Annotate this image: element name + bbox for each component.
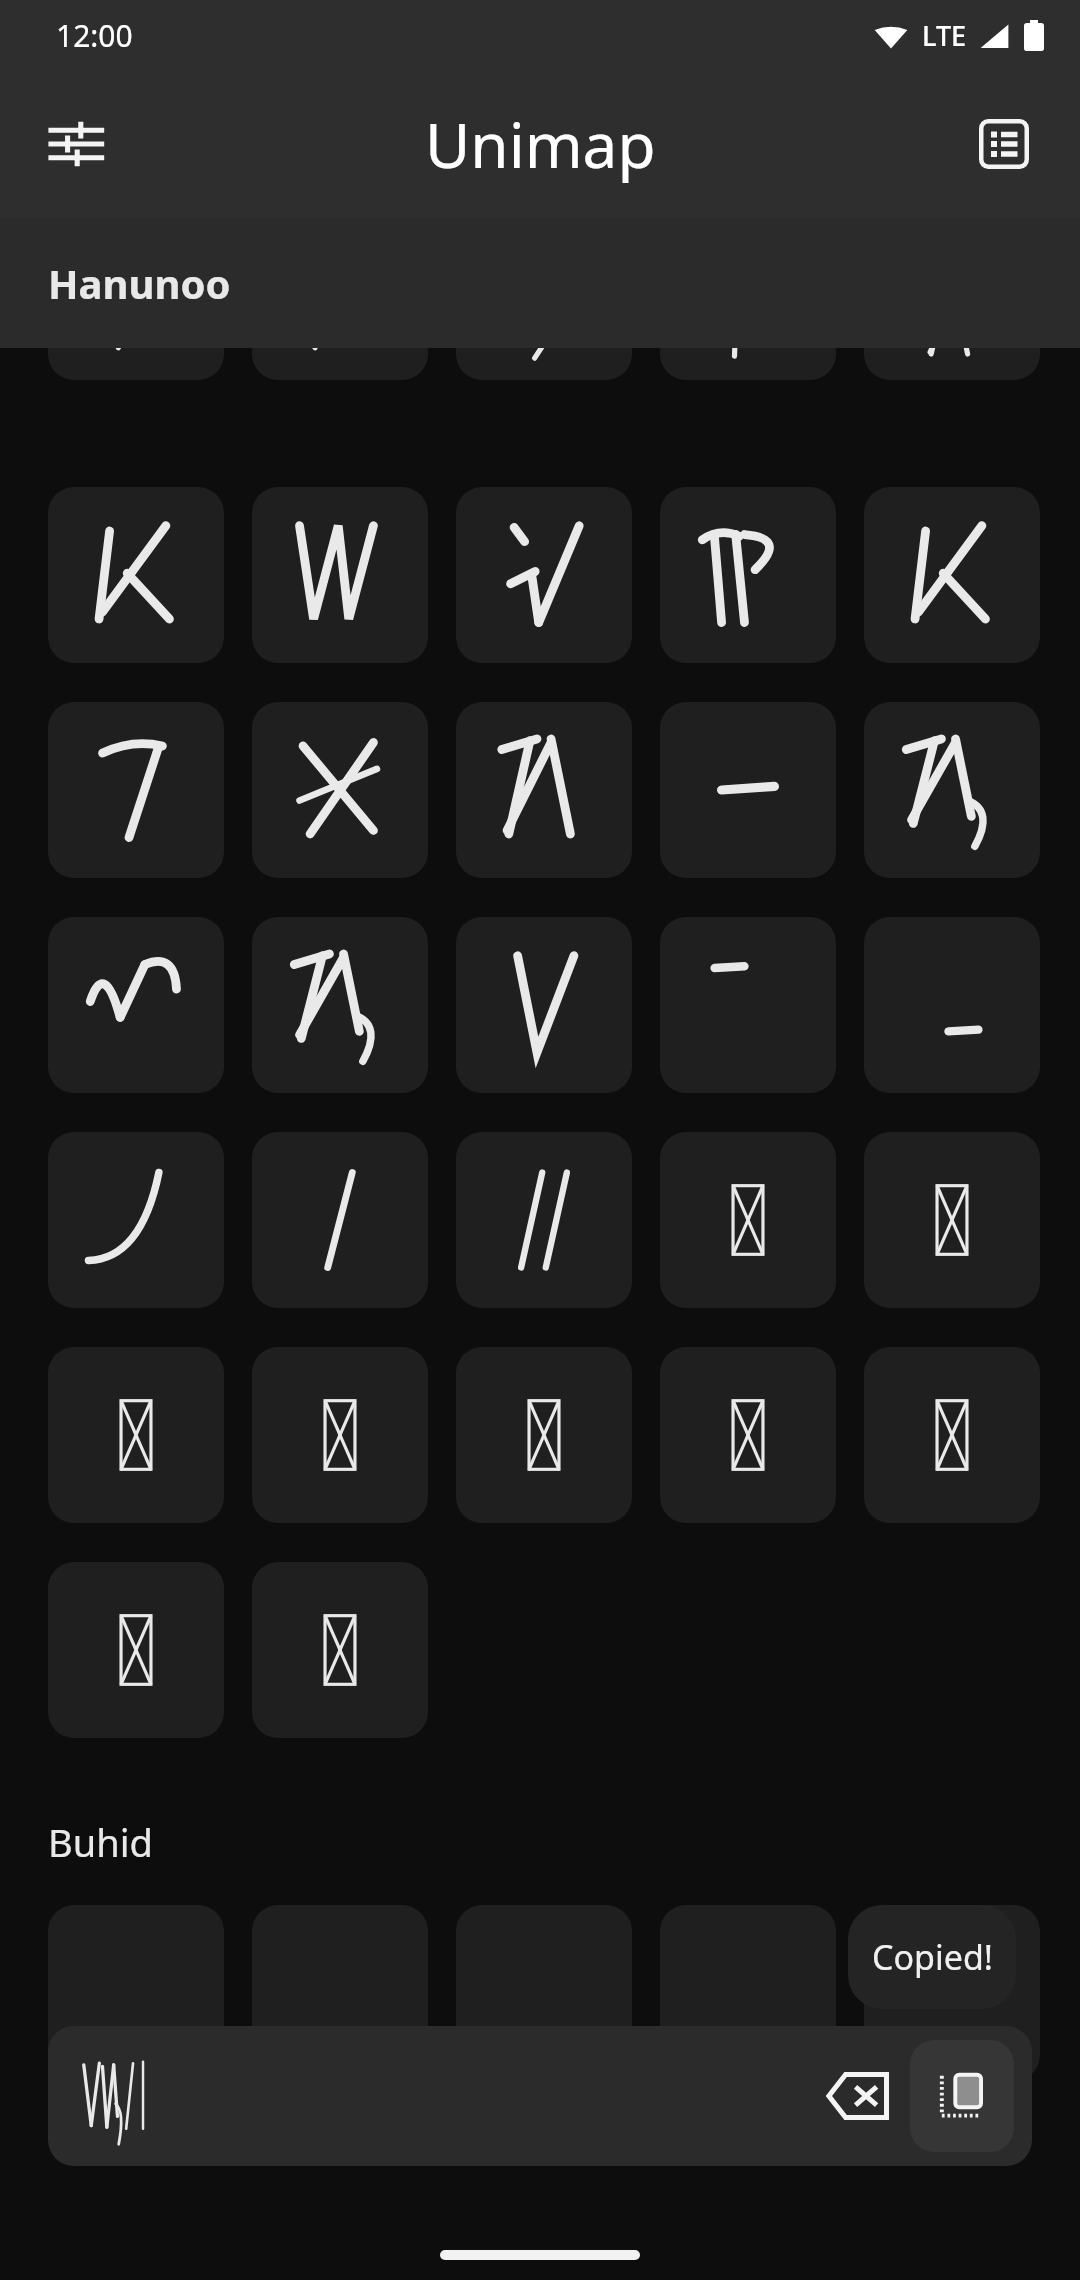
button[interactable]	[48, 702, 224, 878]
button[interactable]	[48, 487, 224, 663]
staticText: 12:00	[56, 15, 133, 56]
button[interactable]	[252, 487, 428, 663]
button[interactable]	[456, 487, 632, 663]
button[interactable]	[864, 702, 1040, 878]
button[interactable]	[660, 487, 836, 663]
button[interactable]	[864, 917, 1040, 1093]
button[interactable]	[456, 1132, 632, 1308]
button[interactable]: Block list	[958, 98, 1050, 190]
button[interactable]	[660, 1905, 836, 2081]
button[interactable]	[660, 702, 836, 878]
staticText: LTE	[922, 17, 967, 54]
button[interactable]	[252, 1132, 428, 1308]
button[interactable]	[456, 917, 632, 1093]
staticText: Hanunoo	[48, 256, 231, 310]
button[interactable]: Backspace	[48, 2026, 1032, 2166]
button[interactable]	[252, 702, 428, 878]
staticText: Copied!	[872, 1934, 993, 1980]
button[interactable]	[660, 917, 836, 1093]
button[interactable]	[48, 1562, 224, 1738]
staticText: Buhid	[48, 1816, 153, 1868]
button[interactable]	[456, 348, 632, 380]
button[interactable]	[660, 1132, 836, 1308]
button[interactable]	[48, 1905, 224, 2081]
button[interactable]	[252, 348, 428, 380]
button[interactable]	[252, 1347, 428, 1523]
button[interactable]	[48, 348, 224, 380]
button[interactable]	[48, 1347, 224, 1523]
button[interactable]	[864, 1132, 1040, 1308]
button[interactable]	[252, 1905, 428, 2081]
button[interactable]	[660, 348, 836, 380]
button[interactable]	[456, 1347, 632, 1523]
button[interactable]	[456, 702, 632, 878]
staticText: Unimap	[425, 102, 656, 186]
button[interactable]: Backspace	[812, 2050, 904, 2142]
button[interactable]: Filter settings	[30, 98, 122, 190]
button[interactable]	[252, 917, 428, 1093]
button[interactable]	[864, 348, 1040, 380]
button[interactable]	[48, 1132, 224, 1308]
button[interactable]	[864, 1905, 1040, 2081]
button[interactable]	[864, 487, 1040, 663]
button[interactable]	[660, 1347, 836, 1523]
button[interactable]	[456, 1905, 632, 2081]
button[interactable]: Copy to clipboard	[910, 2040, 1014, 2152]
button[interactable]	[48, 917, 224, 1093]
button[interactable]	[252, 1562, 428, 1738]
button[interactable]	[864, 1347, 1040, 1523]
